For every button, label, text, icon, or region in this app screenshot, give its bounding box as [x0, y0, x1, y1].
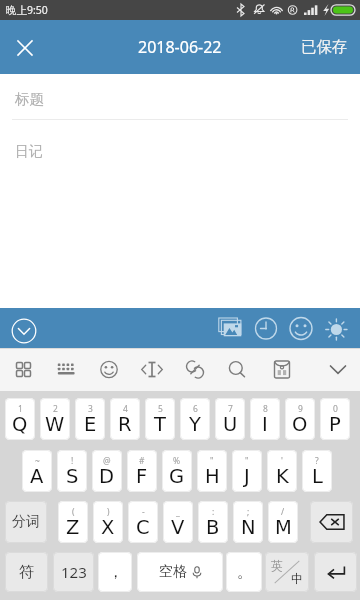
staticText: @ [103, 455, 111, 467]
button[interactable]: _ [163, 501, 193, 543]
button[interactable]: Enter [314, 552, 357, 592]
button[interactable]: Collapse keyboard [8, 315, 40, 347]
staticText: " [245, 455, 249, 467]
staticText: % [173, 455, 181, 467]
button[interactable]: ? [302, 450, 332, 492]
button[interactable]: Insert time [258, 308, 292, 348]
button[interactable]: Keyboard layout [45, 348, 88, 391]
button[interactable]: Shortcuts [174, 348, 217, 391]
button[interactable]: ' [267, 450, 297, 492]
staticText: O [292, 413, 308, 436]
button[interactable]: 5 [145, 398, 175, 440]
button[interactable]: Brightness [326, 308, 360, 348]
staticText: ? [315, 455, 319, 467]
staticText: S [66, 465, 79, 488]
staticText: ~ [35, 455, 40, 467]
button[interactable]: 6 [180, 398, 210, 440]
staticText: V [171, 516, 185, 539]
staticText: 4 [123, 403, 128, 415]
button[interactable]: ) [93, 501, 123, 543]
staticText: Q [12, 413, 28, 436]
button[interactable]: 2 [40, 398, 70, 440]
button[interactable]: Hide keyboard [312, 348, 360, 391]
button[interactable]: 7 [215, 398, 245, 440]
button[interactable]: ( [58, 501, 88, 543]
staticText: B [206, 516, 220, 539]
staticText: I [262, 413, 268, 436]
staticText: Z [66, 516, 80, 539]
staticText: 日记 [15, 143, 43, 161]
staticText: # [139, 455, 145, 467]
staticText: 7 [228, 403, 233, 415]
button[interactable]: @ [92, 450, 122, 492]
staticText: E [84, 413, 97, 436]
staticText: 分词 [12, 513, 40, 531]
button[interactable]: 9 [285, 398, 315, 440]
button[interactable]: - [128, 501, 158, 543]
button[interactable]: Insert image [224, 308, 258, 348]
staticText: R [118, 413, 132, 436]
button[interactable]: ~ [22, 450, 52, 492]
staticText: Y [189, 413, 201, 436]
button[interactable]: 3 [75, 398, 105, 440]
staticText: 晚上9:50 [6, 3, 48, 17]
button[interactable]: Switch language [265, 552, 309, 592]
button[interactable]: 已保存 [295, 28, 354, 66]
button[interactable]: Emoji [88, 348, 131, 391]
button[interactable]: Insert emoji [292, 308, 326, 348]
staticText: N [241, 516, 256, 539]
staticText: ) [107, 506, 110, 518]
button[interactable]: 1 [5, 398, 35, 440]
staticText: ; [247, 506, 250, 518]
staticText: 2 [53, 403, 58, 415]
staticText: 标题 [15, 90, 44, 108]
button[interactable]: ! [57, 450, 87, 492]
button[interactable]: 123 [53, 552, 94, 592]
button[interactable]: ; [233, 501, 263, 543]
staticText: W [45, 413, 65, 436]
staticText: 8 [263, 403, 268, 415]
button[interactable]: Red packet [261, 348, 312, 391]
button[interactable]: Close [0, 23, 49, 72]
button[interactable]: 0 [320, 398, 350, 440]
button[interactable]: % [162, 450, 192, 492]
button[interactable]: Move cursor [131, 348, 174, 391]
button[interactable]: 8 [250, 398, 280, 440]
staticText: 2018-06-22 [138, 36, 222, 58]
staticText: 空格 [159, 563, 187, 581]
staticText: C [136, 516, 150, 539]
button[interactable]: # [127, 450, 157, 492]
staticText: 。 [237, 563, 252, 582]
staticText: U [223, 413, 238, 436]
button[interactable]: 符 [5, 552, 48, 592]
staticText: M [275, 516, 292, 539]
staticText: 9 [298, 403, 303, 415]
staticText: ' [281, 455, 283, 467]
button[interactable]: " [232, 450, 262, 492]
staticText: H [205, 465, 220, 488]
button[interactable]: 4 [110, 398, 140, 440]
staticText: L [312, 465, 323, 488]
button[interactable]: ， [98, 552, 132, 592]
staticText: 0 [333, 403, 338, 415]
button[interactable]: " [197, 450, 227, 492]
button[interactable]: Backspace [310, 501, 353, 543]
button[interactable]: 。 [226, 552, 262, 592]
staticText: P [329, 413, 341, 436]
staticText: - [142, 506, 145, 518]
staticText: ， [108, 563, 123, 582]
button[interactable]: 空格 [137, 552, 223, 592]
staticText: / [281, 506, 285, 518]
staticText: F [136, 465, 148, 488]
staticText: _ [176, 506, 180, 518]
button[interactable]: Keyboards [0, 348, 45, 391]
button[interactable]: : [198, 501, 228, 543]
button[interactable]: Search [217, 348, 261, 391]
staticText: K [276, 465, 289, 488]
button[interactable]: 分词 [5, 501, 47, 543]
staticText: G [169, 465, 185, 488]
staticText: 3 [88, 403, 93, 415]
staticText: 1 [18, 403, 23, 415]
staticText: ! [71, 455, 74, 467]
button[interactable]: / [268, 501, 298, 543]
